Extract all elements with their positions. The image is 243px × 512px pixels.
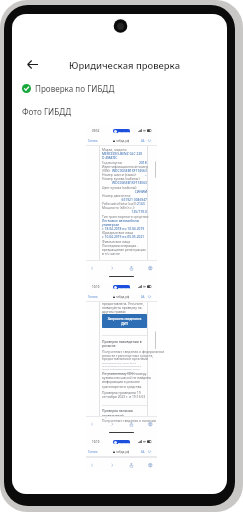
- staticText: 10:10: [92, 285, 100, 289]
- button[interactable]: Проверка по ГИБДД: [22, 83, 115, 94]
- button[interactable]: Reload: [148, 450, 151, 453]
- staticText: ВКонтакте: [118, 441, 130, 444]
- staticText: предоставляемые органами: [102, 356, 148, 361]
- staticText: Идентификационный номер: [102, 164, 148, 169]
- staticText: предоставлена. Уточните,: [102, 301, 144, 306]
- staticText: гибдд.рф: [116, 450, 130, 454]
- button[interactable]: АА: [141, 139, 145, 143]
- button[interactable]: Screenshot 3: [86, 437, 157, 473]
- button[interactable]: Готово: [88, 450, 98, 454]
- staticText: СИНИЙ: [102, 189, 147, 194]
- staticText: Последняя операция -: [102, 243, 139, 248]
- staticText: D 4MATIC: [102, 155, 118, 160]
- button[interactable]: Screenshot 1: [86, 126, 157, 280]
- staticText: Физическое лицо: [102, 239, 131, 244]
- staticText: MERCEDES-BENZ GLC 220: [102, 151, 143, 156]
- staticText: Юридическое лицо: [102, 230, 134, 235]
- staticText: Цвет кузова (кабины):: [102, 185, 138, 190]
- staticText: сентября 2023 г. в 19:13:03: [102, 394, 146, 399]
- staticText: –: [145, 172, 147, 177]
- staticText: пожалуйста проверку на: [102, 305, 142, 310]
- staticText: Рабочий объём (см3):: [102, 201, 137, 206]
- staticText: другом правах: [102, 309, 126, 314]
- staticText: 10:10: [92, 440, 100, 444]
- button[interactable]: Reload: [148, 139, 151, 142]
- staticText: розыске транспортных средств,: [102, 353, 154, 358]
- staticText: Юридическая проверка: [69, 59, 180, 72]
- button[interactable]: Back: [20, 52, 44, 76]
- staticText: кузова или шасси) не найдена: [102, 375, 151, 380]
- staticText: Номер шасси (рамы):: [102, 172, 137, 177]
- button[interactable]: АА: [141, 295, 145, 299]
- staticText: Легковые автомобили: [102, 218, 139, 223]
- staticText: целях информирования, носят: [102, 367, 140, 370]
- staticText: универсал: [102, 222, 120, 227]
- button[interactable]: Back to app: [113, 285, 130, 289]
- staticText: Проверка нахождения в: [102, 339, 142, 343]
- button[interactable]: Запросить сведения в ДУП: [102, 314, 147, 328]
- staticText: информация о розыске: [102, 379, 140, 384]
- staticText: использованы исключительно в: [102, 364, 142, 367]
- staticText: справочный характер и не: [102, 371, 135, 374]
- staticText: 651921 0046947: [102, 197, 147, 202]
- button[interactable]: Back to app: [113, 129, 130, 133]
- staticText: Номер двигателя:: [102, 193, 131, 198]
- staticText: WDC0G5EB1XF174563: [112, 168, 147, 173]
- staticText: Мощность (кВт/л.с.):: [102, 205, 135, 210]
- staticText: транспортного средства.: [102, 384, 143, 389]
- button[interactable]: Screenshot 2: [86, 282, 157, 436]
- button[interactable]: Reload: [148, 295, 151, 298]
- staticText: (VIN):: [102, 168, 111, 173]
- button[interactable]: Готово: [88, 295, 98, 299]
- staticText: Фото ГИБДД: [22, 106, 72, 117]
- staticText: 2018: [139, 160, 147, 165]
- staticText: Запросить сведения в ДУП: [104, 317, 145, 326]
- staticText: гибдд.рф: [116, 139, 130, 143]
- button[interactable]: Готово: [88, 139, 98, 143]
- staticText: Проверка наличия: [102, 408, 133, 412]
- staticText: WDC0G5EB1XF174563: [102, 180, 147, 185]
- staticText: Полученные сведения о федеральном: [102, 349, 165, 354]
- staticText: ВКонтакте: [118, 286, 130, 289]
- staticText: Полученные сведения о наличии: [102, 418, 156, 423]
- staticText: Проверка проведена 19: [102, 390, 141, 395]
- button[interactable]: Back to app: [113, 440, 130, 444]
- staticText: гибдд.рф: [116, 295, 130, 299]
- staticText: в т/ч числе: [102, 251, 120, 256]
- staticText: 2143.0: [137, 201, 147, 206]
- staticText: Марка, модель:: [102, 147, 128, 152]
- staticText: Номер кузова (кабины):: [102, 176, 141, 181]
- button[interactable]: АА: [141, 450, 145, 454]
- staticText: Тип транспортного средства:: [102, 214, 149, 219]
- staticText: с 18.04.2018 по 10.04.2019: [102, 226, 145, 231]
- staticText: Год выпуска:: [102, 160, 123, 165]
- staticText: По указанному VIN (номеру: [102, 371, 147, 376]
- staticText: ВКонтакте: [118, 130, 130, 133]
- staticText: прекращение регистрации: [102, 247, 146, 252]
- staticText: ограничений: [102, 413, 124, 417]
- staticText: внутренних дел, могут быть: [102, 361, 137, 364]
- staticText: Проверка по ГИБДД: [35, 83, 115, 94]
- staticText: 09:52: [92, 129, 100, 133]
- staticText: 125/170.0: [102, 209, 147, 214]
- staticText: розыске: [102, 343, 116, 347]
- staticText: с 10.04.2019 по 05.05.2021: [102, 234, 145, 239]
